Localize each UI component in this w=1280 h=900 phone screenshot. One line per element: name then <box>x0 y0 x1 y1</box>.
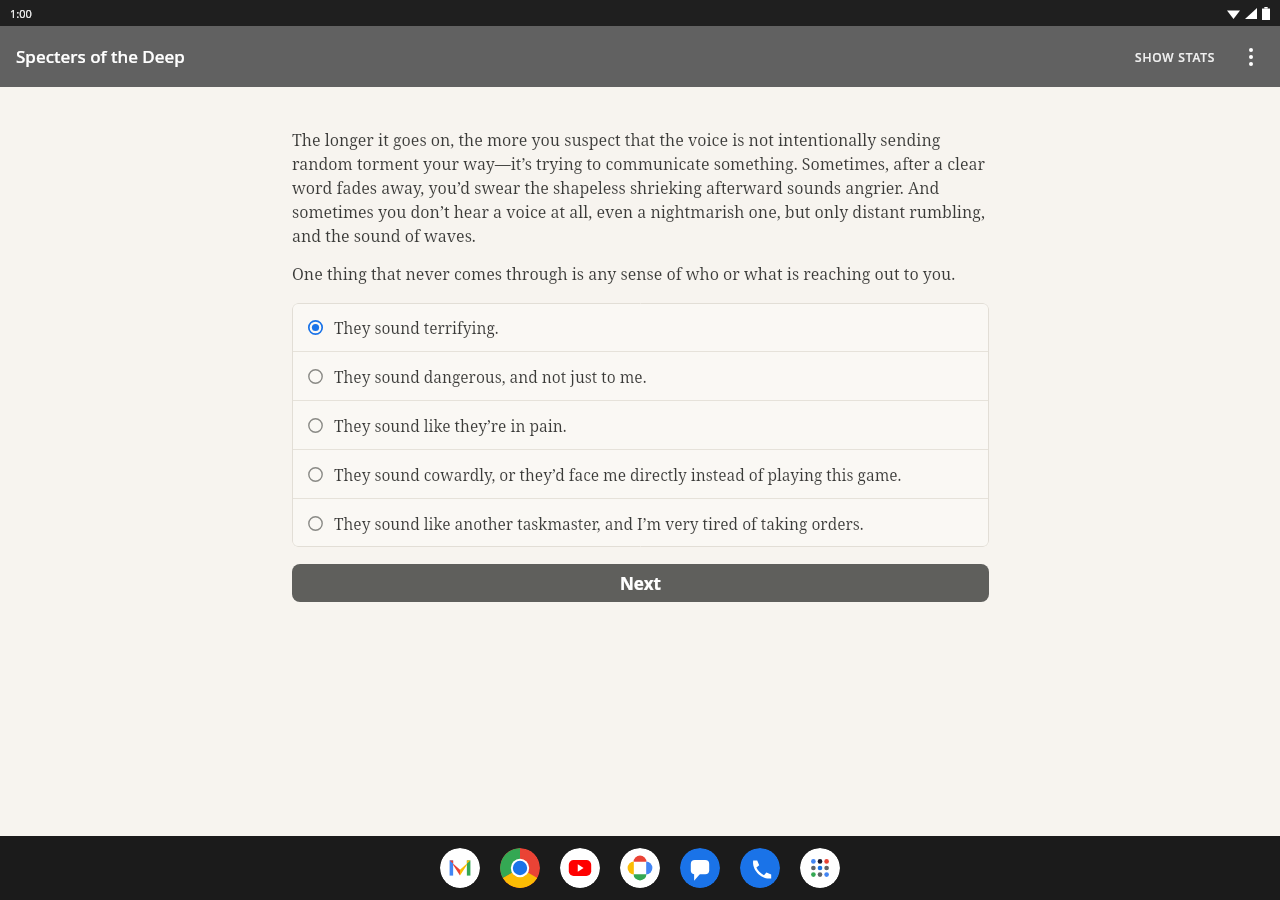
staticText: They sound cowardly, or they’d face me d… <box>334 464 902 485</box>
button[interactable]: Messages <box>680 848 720 888</box>
button[interactable]: Photos <box>620 848 660 888</box>
button[interactable]: They sound cowardly, or they’d face me d… <box>292 450 989 498</box>
staticText: They sound like another taskmaster, and … <box>334 513 864 534</box>
button[interactable]: Gmail <box>440 848 480 888</box>
staticText: One thing that never comes through is an… <box>292 263 989 285</box>
button[interactable]: They sound dangerous, and not just to me… <box>292 352 989 400</box>
staticText: Next <box>620 572 661 595</box>
button[interactable]: Next <box>292 564 989 602</box>
staticText: Specters of the Deep <box>16 45 185 68</box>
button[interactable]: They sound terrifying. <box>292 303 989 351</box>
button[interactable]: All apps <box>800 848 840 888</box>
button[interactable]: SHOW STATS <box>1123 35 1228 79</box>
button[interactable]: YouTube <box>560 848 600 888</box>
staticText: SHOW STATS <box>1135 49 1216 65</box>
staticText: They sound like they’re in pain. <box>334 415 567 436</box>
staticText: They sound terrifying. <box>334 317 499 338</box>
button[interactable]: They sound like they’re in pain. <box>292 401 989 449</box>
staticText: The longer it goes on, the more you susp… <box>292 129 989 247</box>
button[interactable]: More options <box>1228 34 1274 80</box>
button[interactable]: They sound like another taskmaster, and … <box>292 499 989 547</box>
staticText: They sound dangerous, and not just to me… <box>334 366 647 387</box>
staticText: 1:00 <box>10 6 32 21</box>
button[interactable]: Chrome <box>500 848 540 888</box>
button[interactable]: Phone <box>740 848 780 888</box>
